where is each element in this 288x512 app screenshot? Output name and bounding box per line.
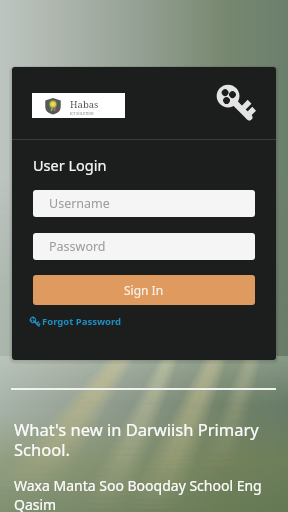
- staticText: Habas: [70, 98, 99, 111]
- button[interactable]: Username: [33, 190, 255, 217]
- button[interactable]: Password: [33, 233, 255, 260]
- staticText: What's new in Darwiish Primary School.: [14, 418, 276, 461]
- button[interactable]: Sign In: [33, 275, 255, 305]
- staticText: Waxa Manta Soo Booqday School Eng Qasim: [14, 476, 276, 512]
- button[interactable]: Forgot Password: [29, 315, 122, 328]
- staticText: Sign In: [124, 282, 164, 298]
- button[interactable]: Login key: [210, 81, 261, 126]
- staticText: Forgot Password: [42, 315, 122, 328]
- staticText: ICT SOLUTION: [70, 111, 94, 116]
- staticText: Username: [49, 195, 110, 212]
- staticText: Password: [49, 238, 106, 255]
- staticText: User Login: [33, 155, 107, 175]
